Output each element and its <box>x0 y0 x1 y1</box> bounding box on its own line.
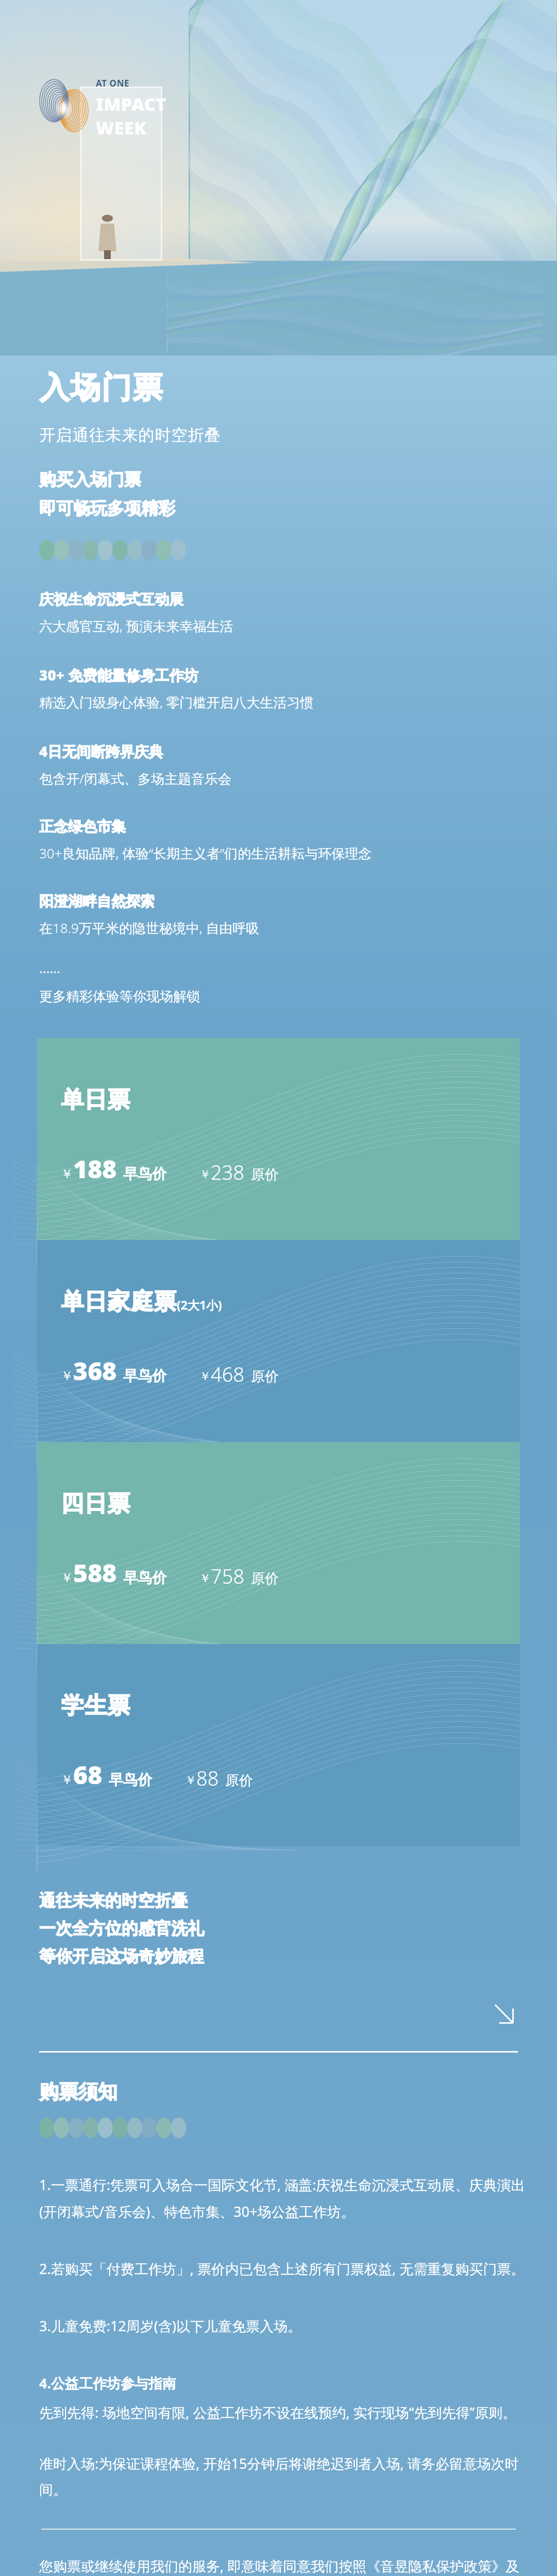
staticText: 4日无间断跨界庆典 <box>39 741 163 761</box>
staticText: 4.公益工作坊参与指南 <box>39 2374 177 2393</box>
staticText: 购票须知 <box>39 2079 117 2104</box>
staticText: 购买入场门票 <box>39 469 141 490</box>
staticText: AT ONE <box>96 77 130 89</box>
staticText: 精选入门级身心体验, 零门槛开启八大生活习惯 <box>39 693 314 711</box>
staticText: ￥ <box>61 1570 73 1586</box>
staticText: 正念绿色市集 <box>39 818 126 836</box>
staticText: 3.儿童免费:12周岁(含)以下儿童免票入场。 <box>39 2316 302 2335</box>
staticText: 单日家庭票 <box>61 1287 177 1316</box>
staticText: ￥ <box>61 1166 73 1182</box>
staticText: 原价 <box>251 1570 279 1587</box>
staticText: 开启通往未来的时空折叠 <box>39 425 221 445</box>
staticText: 588 <box>73 1556 117 1589</box>
staticText: (2大1小) <box>177 1297 222 1313</box>
staticText: ￥ <box>61 1772 73 1788</box>
staticText: 您购票或继续使用我们的服务, 即意味着同意我们按照《音昱隐私保护政策》及《音昱内… <box>39 2556 528 2576</box>
staticText: 在18.9万平米的隐世秘境中, 自由呼吸 <box>39 919 260 937</box>
staticText: 368 <box>73 1354 117 1387</box>
staticText: 30+良知品牌, 体验“长期主义者”们的生活耕耘与环保理念 <box>39 844 372 862</box>
staticText: 88 <box>196 1765 219 1791</box>
staticText: 准时入场:为保证课程体验, 开始15分钟后将谢绝迟到者入场, 请务必留意场次时间… <box>39 2454 528 2499</box>
staticText: 入场门票 <box>39 369 163 406</box>
staticText: 通往未来的时空折叠 <box>39 1890 188 1911</box>
staticText: 早鸟价 <box>123 1367 166 1385</box>
button[interactable]: 四日票 <box>37 1442 520 1644</box>
button[interactable]: 单日家庭票 <box>37 1240 520 1442</box>
staticText: ￥ <box>199 1369 211 1384</box>
staticText: 更多精彩体验等你现场解锁 <box>39 988 200 1005</box>
staticText: 68 <box>73 1758 103 1791</box>
staticText: 原价 <box>251 1368 279 1385</box>
staticText: 学生票 <box>61 1691 130 1720</box>
staticText: 四日票 <box>61 1489 130 1518</box>
staticText: 早鸟价 <box>123 1569 166 1587</box>
staticText: 1.一票通行:凭票可入场合一国际文化节, 涵盖:庆祝生命沉浸式互动展、庆典演出(… <box>39 2175 528 2221</box>
staticText: 庆祝生命沉浸式互动展 <box>39 590 183 608</box>
staticText: …… <box>39 959 61 977</box>
button[interactable]: 学生票 <box>37 1644 520 1846</box>
staticText: 阳澄湖畔自然探索 <box>39 892 155 910</box>
staticText: 包含开/闭幕式、多场主题音乐会 <box>39 769 232 788</box>
staticText: 一次全方位的感官洗礼 <box>39 1918 204 1939</box>
staticText: 单日票 <box>61 1086 130 1114</box>
staticText: 原价 <box>251 1166 279 1183</box>
staticText: 原价 <box>225 1772 253 1789</box>
staticText: 188 <box>73 1152 117 1185</box>
staticText: 238 <box>211 1159 245 1185</box>
staticText: 早鸟价 <box>109 1771 152 1789</box>
staticText: 先到先得: 场地空间有限, 公益工作坊不设在线预约, 实行现场“先到先得”原则。 <box>39 2403 517 2422</box>
staticText: ￥ <box>199 1571 211 1586</box>
staticText: 2.若购买「付费工作坊」, 票价内已包含上述所有门票权益, 无需重复购买门票。 <box>39 2259 525 2278</box>
staticText: 30+ 免费能量修身工作坊 <box>39 665 198 685</box>
staticText: ￥ <box>199 1167 211 1182</box>
staticText: IMPACT <box>96 92 166 116</box>
button[interactable]: Scroll down <box>491 2002 518 2028</box>
staticText: ￥ <box>61 1368 73 1384</box>
staticText: WEEK <box>96 116 147 140</box>
staticText: 即可畅玩多项精彩 <box>39 498 175 519</box>
button[interactable]: 单日票 <box>37 1038 520 1240</box>
staticText: ￥ <box>185 1773 196 1788</box>
staticText: 六大感官互动, 预演未来幸福生活 <box>39 617 233 635</box>
staticText: 758 <box>211 1563 245 1589</box>
staticText: 早鸟价 <box>123 1165 166 1183</box>
staticText: 等你开启这场奇妙旅程 <box>39 1946 204 1967</box>
staticText: 468 <box>211 1361 245 1387</box>
